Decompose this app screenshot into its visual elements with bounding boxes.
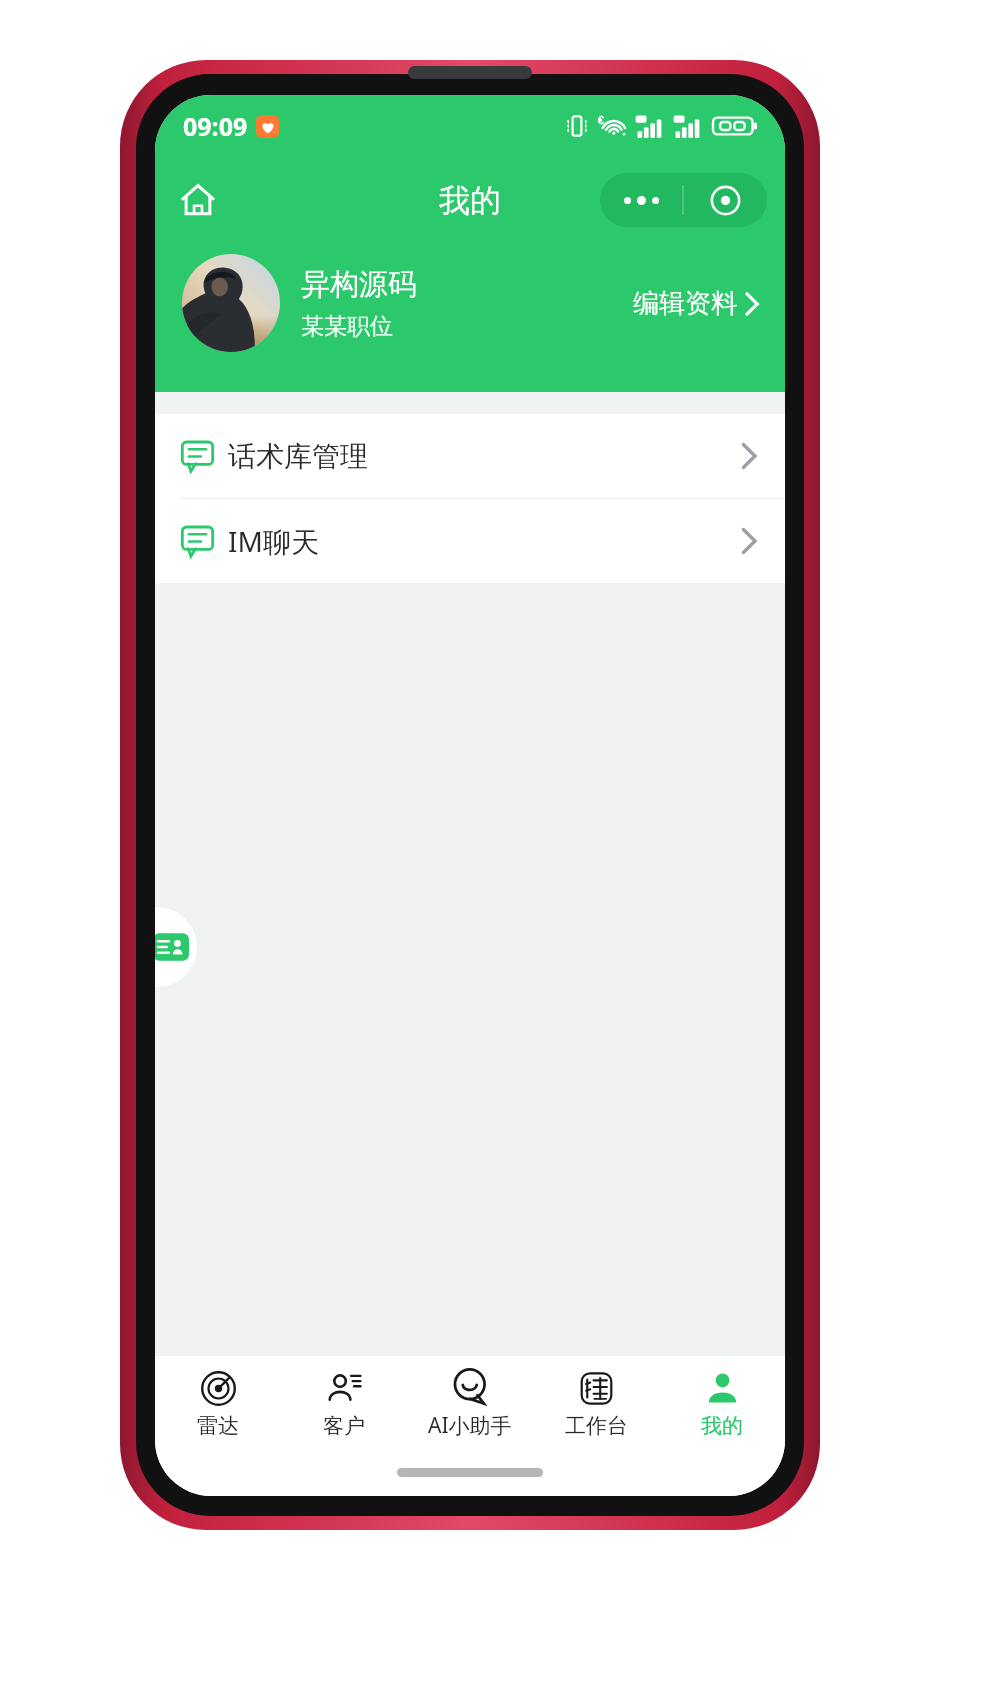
button[interactable]: AI小助手 — [407, 1356, 533, 1452]
button[interactable]: Close — [684, 173, 767, 227]
button[interactable]: 异构源码 — [155, 243, 785, 363]
staticText: AI小助手 — [428, 1411, 512, 1440]
staticText: 客户 — [323, 1413, 365, 1439]
button[interactable]: 话术库管理 — [155, 414, 785, 498]
staticText: 编辑资料 — [633, 287, 737, 320]
staticText: 雷达 — [197, 1413, 239, 1439]
button[interactable]: More options — [600, 173, 682, 227]
staticText: 某某职位 — [301, 312, 393, 341]
staticText: IM聊天 — [228, 522, 319, 560]
button[interactable]: 编辑资料 — [633, 287, 785, 320]
button[interactable]: Contacts — [155, 907, 197, 987]
staticText: 异构源码 — [301, 266, 417, 303]
staticText: 我的 — [701, 1413, 743, 1439]
staticText: 话术库管理 — [228, 439, 368, 474]
staticText: 09:09 — [183, 109, 248, 143]
button[interactable]: 雷达 — [155, 1356, 281, 1452]
button[interactable]: IM聊天 — [155, 499, 785, 583]
staticText: 我的 — [439, 181, 501, 220]
button[interactable]: Home — [169, 171, 227, 229]
button[interactable]: 我的 — [659, 1356, 785, 1452]
button[interactable]: 客户 — [281, 1356, 407, 1452]
staticText: 工作台 — [565, 1413, 628, 1439]
button[interactable]: 工作台 — [533, 1356, 659, 1452]
